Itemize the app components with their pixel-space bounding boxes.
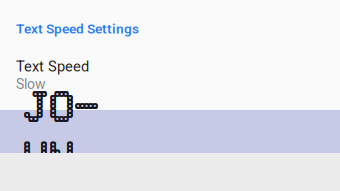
staticText: Text Speed bbox=[16, 58, 89, 75]
staticText: JOHN bbox=[26, 80, 102, 181]
staticText: JOHN bbox=[25, 81, 101, 182]
staticText: JOHN bbox=[25, 80, 101, 181]
button[interactable]: Text Speed bbox=[0, 37, 340, 104]
staticText: Text Speed Settings bbox=[16, 21, 139, 37]
staticText: JOHN bbox=[25, 82, 101, 183]
staticText: JOHN bbox=[26, 81, 102, 182]
staticText: JOHN bbox=[25, 81, 101, 182]
staticText: Slow bbox=[16, 76, 46, 92]
staticText: JOHN bbox=[26, 82, 102, 183]
staticText: JOHN bbox=[24, 81, 100, 182]
staticText: JOHN bbox=[24, 80, 100, 181]
staticText: JOHN bbox=[24, 82, 100, 183]
